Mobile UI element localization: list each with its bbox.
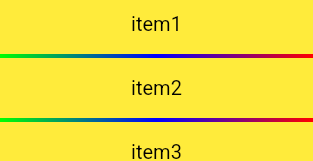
button[interactable]: item1: [0, 0, 313, 54]
staticText: item2: [131, 76, 182, 99]
staticText: item3: [131, 140, 182, 161]
button[interactable]: item3: [0, 122, 313, 161]
button[interactable]: item2: [0, 58, 313, 118]
staticText: item1: [131, 12, 182, 35]
